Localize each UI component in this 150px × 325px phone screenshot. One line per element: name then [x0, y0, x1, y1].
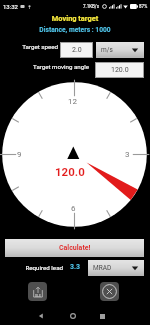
staticText: 120.0: [55, 165, 85, 178]
button[interactable]: m/s: [96, 42, 144, 58]
button[interactable]: Close: [100, 282, 119, 301]
button[interactable]: Recents: [95, 309, 109, 323]
staticText: 3: [125, 150, 130, 159]
staticText: 9: [17, 150, 22, 159]
staticText: 6: [71, 204, 76, 213]
staticText: Target speed: [0, 43, 58, 50]
staticText: 3.3: [68, 263, 82, 271]
button[interactable]: Export XLS: [28, 282, 47, 301]
staticText: 7.1KB/s: [83, 4, 100, 9]
staticText: 2.0: [72, 46, 82, 54]
staticText: Required lead: [0, 264, 63, 271]
staticText: Calculate!: [59, 244, 91, 252]
staticText: Distance, meters : 1000: [0, 26, 150, 34]
button[interactable]: MRAD: [88, 260, 144, 276]
staticText: Target moving angle: [0, 63, 89, 70]
button[interactable]: Home: [66, 309, 80, 323]
staticText: m/s: [101, 46, 113, 54]
staticText: XLS: [35, 294, 41, 298]
staticText: MRAD: [93, 264, 112, 272]
button[interactable]: Calculate!: [5, 239, 144, 257]
staticText: 13:32: [3, 3, 18, 10]
staticText: Moving target: [0, 14, 150, 23]
staticText: 120.0: [111, 66, 129, 74]
staticText: 87%: [139, 4, 148, 9]
button[interactable]: 2.0: [60, 42, 93, 58]
button[interactable]: Back: [34, 309, 48, 323]
button[interactable]: 120.0: [95, 62, 144, 78]
staticText: 12: [68, 97, 77, 106]
